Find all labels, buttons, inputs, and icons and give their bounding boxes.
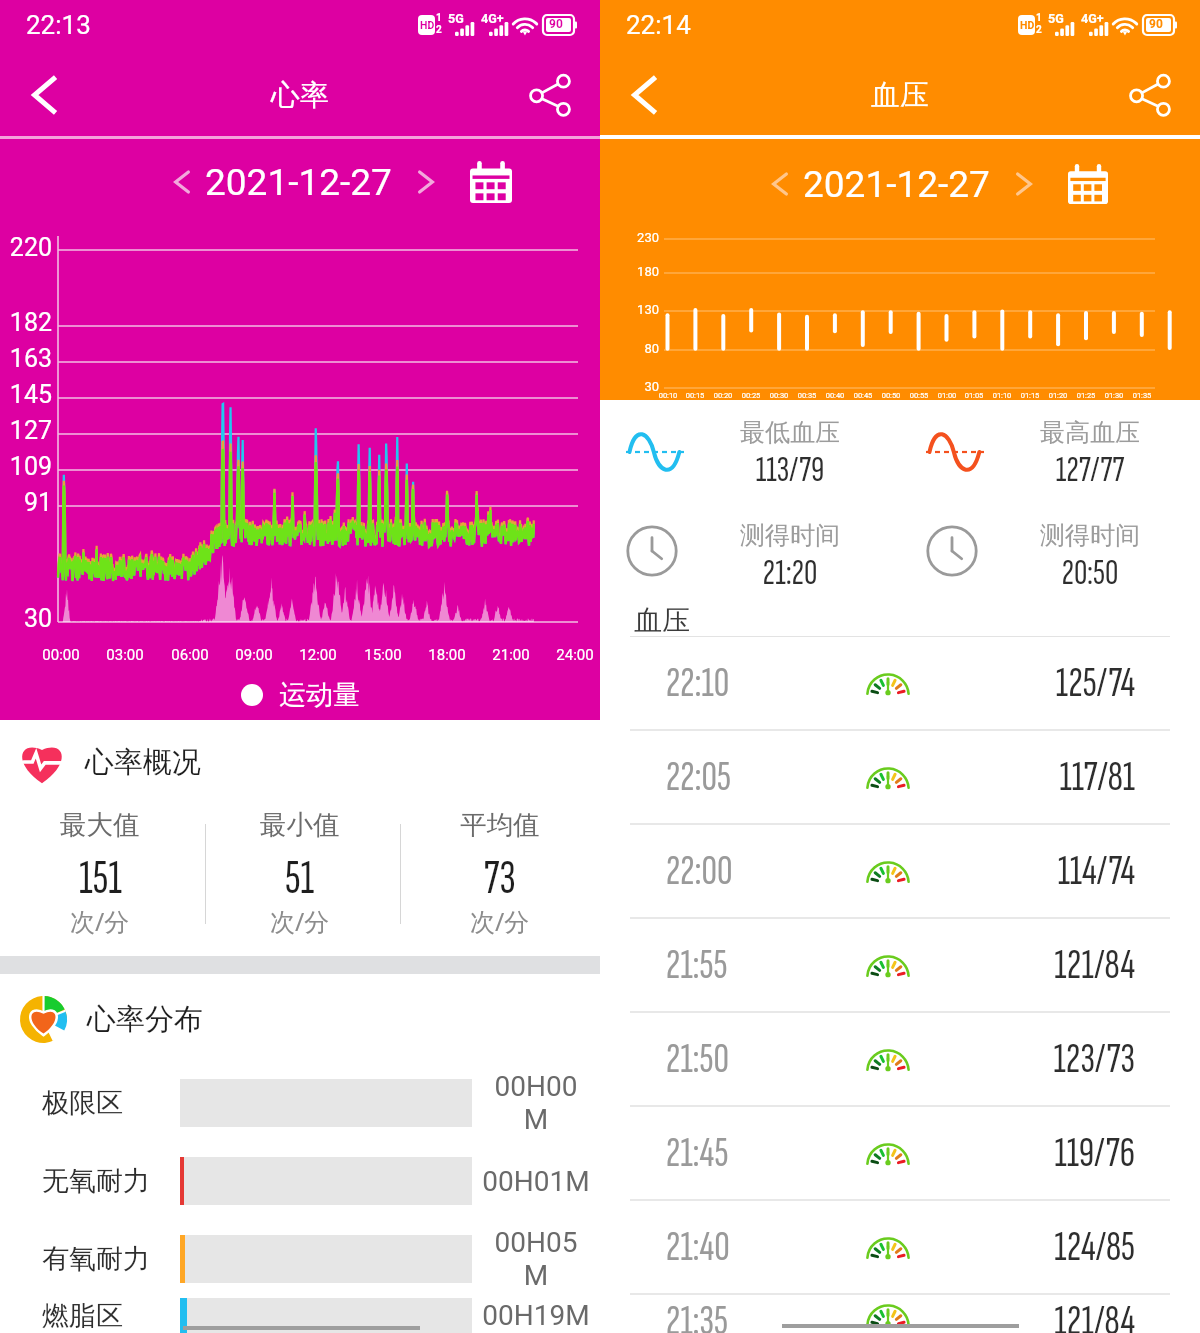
staticText: 00:55 [903,391,935,400]
button[interactable]: 21:50 [600,1013,1200,1105]
staticText: 180 [609,264,659,279]
staticText: 测得时间 [690,520,890,551]
staticText: 21:50 [666,1033,800,1085]
button[interactable]: Share [500,54,600,136]
staticText: 30 [0,604,52,633]
staticText: 01:20 [1042,391,1074,400]
button[interactable]: Share [1100,54,1200,136]
button[interactable]: Next day [1002,162,1046,206]
staticText: 有氧耐力 [42,1242,150,1276]
staticText: 124/85 [976,1221,1135,1273]
button[interactable]: 21:55 [600,919,1200,1011]
staticText: 次/分 [270,904,330,938]
button[interactable]: Calendar [462,153,520,211]
staticText: 123/73 [976,1033,1135,1085]
staticText: 22:14 [626,10,691,40]
staticText: 12:00 [283,646,353,664]
button[interactable]: 21:35 [600,1295,1200,1333]
button[interactable]: Calendar [1060,156,1116,212]
staticText: 2 [436,24,442,36]
staticText: 00:35 [791,391,823,400]
staticText: 00:10 [652,391,684,400]
staticText: 220 [0,233,52,262]
staticText: 91 [0,488,52,517]
staticText: 00:45 [847,391,879,400]
staticText: 114/74 [976,845,1135,897]
staticText: 次/分 [70,904,130,938]
staticText: 24:00 [540,646,610,664]
staticText: 燃脂区 [42,1299,123,1333]
staticText: 01:25 [1070,391,1102,400]
staticText: 113/79 [690,448,890,492]
staticText: 30 [609,379,659,394]
staticText: 01:10 [986,391,1018,400]
staticText: 01:15 [1014,391,1046,400]
staticText: 21:40 [666,1221,800,1273]
staticText: 15:00 [348,646,418,664]
staticText: 00:25 [735,391,767,400]
staticText: 00H00 M [472,1070,600,1136]
staticText: 00:30 [763,391,795,400]
staticText: 2 [1036,24,1042,36]
button[interactable]: 22:05 [600,731,1200,823]
staticText: 01:00 [931,391,963,400]
staticText: 51 [285,850,315,908]
staticText: 次/分 [470,904,530,938]
staticText: 121/84 [976,939,1135,991]
staticText: 00H19M [472,1299,600,1332]
staticText: 06:00 [155,646,225,664]
staticText: 2021-12-27 [205,161,392,204]
staticText: 血压 [871,77,929,114]
staticText: 119/76 [976,1127,1135,1179]
staticText: 4G+ [481,11,504,26]
button[interactable]: 22:00 [600,825,1200,917]
staticText: 151 [79,850,122,908]
staticText: 5G [448,11,464,26]
staticText: 最低血压 [690,417,890,448]
staticText: 22:13 [26,10,91,40]
staticText: 4G+ [1081,11,1104,26]
button[interactable]: 21:45 [600,1107,1200,1199]
staticText: 21:00 [476,646,546,664]
staticText: 00:40 [819,391,851,400]
staticText: 73 [484,850,516,908]
staticText: 1 [1036,12,1042,24]
button[interactable]: 21:40 [600,1201,1200,1293]
staticText: 21:20 [690,551,890,595]
staticText: 1 [436,12,442,24]
staticText: 18:00 [412,646,482,664]
button[interactable]: Back [600,54,690,136]
button[interactable]: 22:10 [600,637,1200,729]
staticText: 127/77 [990,448,1190,492]
staticText: 00:50 [875,391,907,400]
staticText: 极限区 [42,1086,123,1120]
button[interactable]: Previous day [160,160,204,204]
staticText: 130 [609,302,659,317]
staticText: 109 [0,452,52,481]
staticText: 心率分布 [87,1001,203,1038]
staticText: 01:35 [1126,391,1158,400]
staticText: 230 [609,230,659,245]
staticText: 01:30 [1098,391,1130,400]
staticText: 22:05 [666,751,800,803]
staticText: 00:00 [26,646,96,664]
staticText: 21:45 [666,1127,800,1179]
staticText: 22:10 [666,657,800,709]
staticText: 最大值 [60,808,140,841]
staticText: 03:00 [90,646,160,664]
staticText: 80 [609,341,659,356]
staticText: 心率概况 [85,744,201,781]
staticText: 163 [0,344,52,373]
button[interactable]: Next day [404,160,448,204]
staticText: HD [420,19,435,31]
staticText: 00:20 [707,391,739,400]
staticText: 00H05 M [472,1226,600,1292]
staticText: 5G [1048,11,1064,26]
staticText: 运动量 [279,678,360,712]
staticText: 90 [549,17,563,31]
staticText: 20:50 [990,551,1190,595]
staticText: 测得时间 [990,520,1190,551]
button[interactable]: Back [0,54,90,136]
button[interactable]: Previous day [758,162,802,206]
staticText: 09:00 [219,646,289,664]
